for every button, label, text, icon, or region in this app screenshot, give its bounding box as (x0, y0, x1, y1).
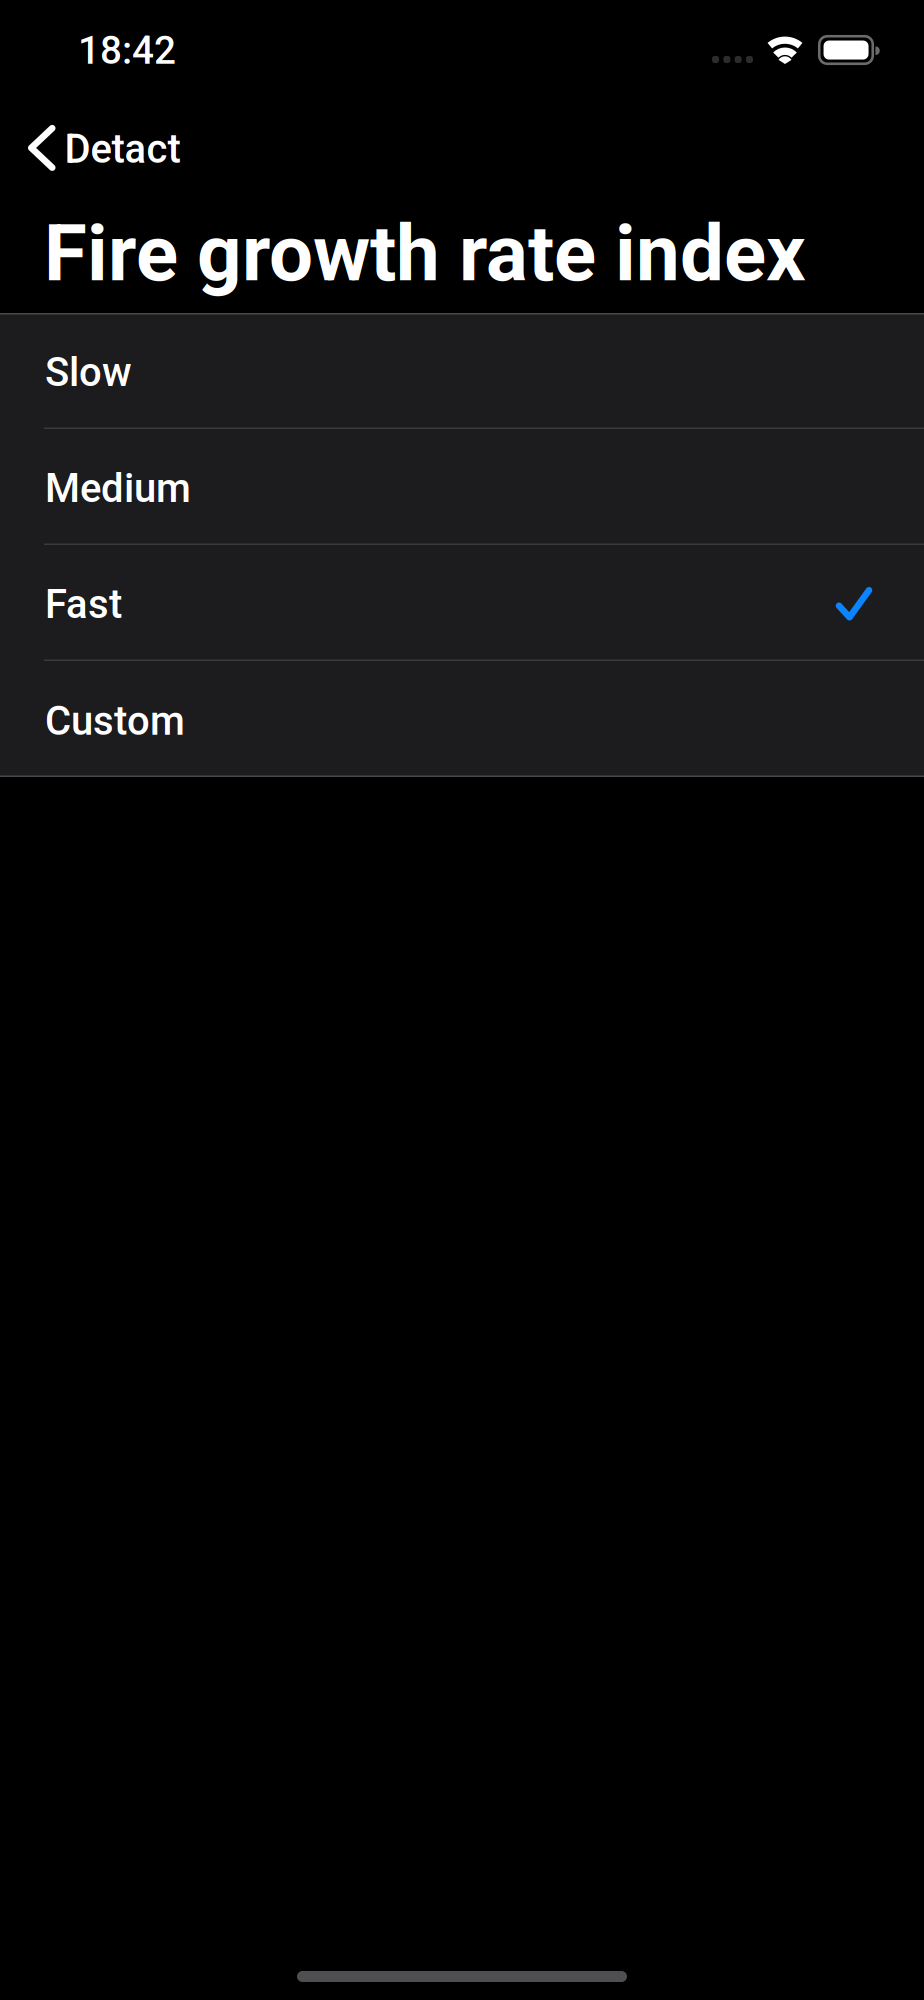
button[interactable]: Custom (0, 661, 924, 777)
button[interactable]: Detact (0, 101, 210, 199)
button[interactable]: Fast (0, 545, 924, 661)
staticText: Custom (45, 698, 185, 744)
staticText: Fast (45, 581, 122, 628)
staticText: Detact (64, 126, 180, 172)
button[interactable]: Slow (0, 313, 924, 429)
staticText: Fire growth rate index (44, 208, 806, 299)
staticText: Slow (45, 349, 132, 396)
button[interactable]: Medium (0, 429, 924, 545)
staticText: Medium (45, 465, 191, 512)
staticText: 18:42 (78, 28, 176, 73)
